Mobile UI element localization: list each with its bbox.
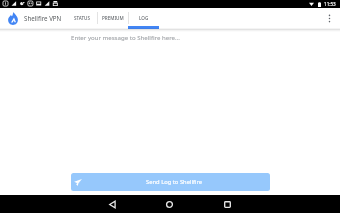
staticText: Shellfire VPN [24,14,62,22]
staticText: Send Log to Shellfire [82,178,266,186]
button[interactable]: STATUS [66,8,97,29]
button[interactable]: More options [323,11,336,26]
staticText: LOG [139,15,149,21]
staticText: PREMIUM [102,15,124,21]
button[interactable]: PREMIUM [97,8,128,29]
staticText: Enter your message to Shellfire here... [71,33,180,41]
button[interactable]: Home [163,198,176,211]
button[interactable]: Recent apps [221,198,234,211]
button[interactable]: LOG [128,8,159,29]
button[interactable]: Send Log to Shellfire [71,173,270,191]
button[interactable]: Back [106,198,119,211]
staticText: STATUS [74,15,90,21]
staticText: 11:53 [324,1,336,7]
